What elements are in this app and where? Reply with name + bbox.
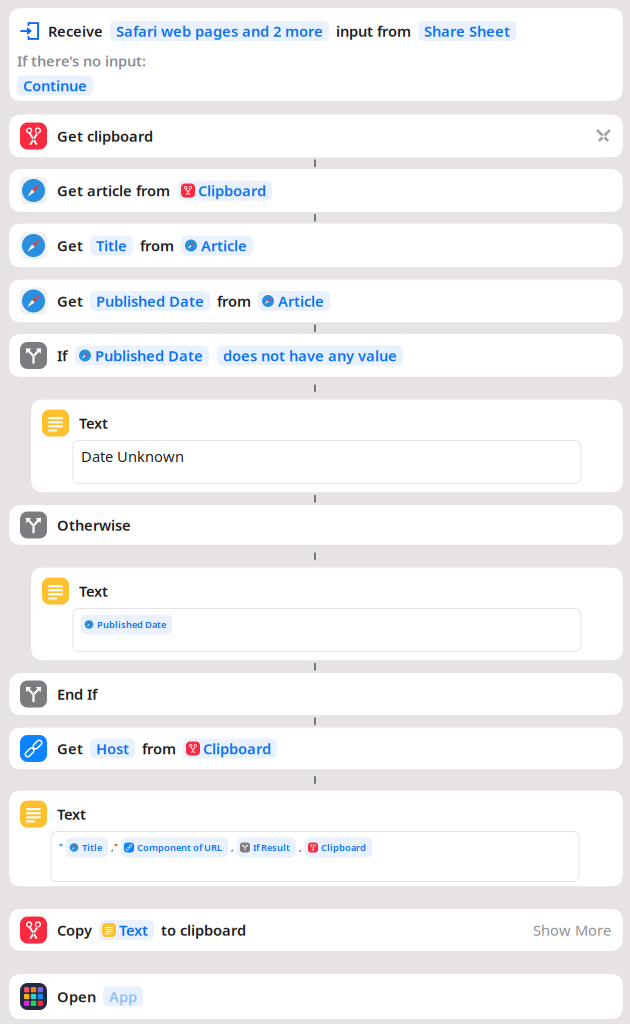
- staticText: Otherwise: [57, 515, 131, 535]
- staticText: Published Date: [97, 618, 166, 631]
- staticText: Receive: [48, 21, 103, 41]
- staticText: Safari web pages and 2 more: [116, 21, 323, 41]
- staticText: ,: [299, 841, 302, 854]
- staticText: Get: [57, 739, 83, 758]
- staticText: to clipboard: [161, 920, 246, 940]
- button[interactable]: Open: [9, 974, 623, 1019]
- staticText: If there's no input:: [17, 51, 146, 70]
- staticText: If Result: [253, 841, 290, 854]
- staticText: Text: [57, 804, 86, 824]
- button[interactable]: Otherwise: [9, 505, 623, 545]
- button[interactable]: Get article from: [9, 169, 623, 212]
- staticText: Share Sheet: [424, 21, 510, 41]
- button[interactable]: If: [9, 334, 623, 377]
- staticText: ,: [231, 841, 234, 854]
- staticText: App: [109, 987, 137, 1006]
- staticText: ": [59, 841, 63, 854]
- staticText: Published Date: [95, 346, 203, 365]
- staticText: Date Unknown: [81, 446, 184, 466]
- staticText: Show More: [533, 920, 611, 940]
- staticText: Text: [119, 920, 148, 940]
- button[interactable]: Text: [9, 790, 623, 886]
- button[interactable]: Receive: [9, 8, 623, 101]
- staticText: End If: [57, 684, 97, 704]
- staticText: Get clipboard: [57, 126, 153, 146]
- button[interactable]: Get: [9, 223, 623, 267]
- staticText: Text: [79, 581, 108, 601]
- staticText: Article: [201, 236, 247, 255]
- staticText: Clipboard: [203, 739, 271, 758]
- staticText: If: [57, 346, 67, 365]
- staticText: Clipboard: [321, 841, 366, 854]
- staticText: from: [217, 291, 251, 311]
- staticText: Article: [278, 291, 324, 311]
- staticText: Copy: [57, 920, 92, 940]
- button[interactable]: Copy: [9, 909, 623, 951]
- button[interactable]: Text: [31, 399, 623, 492]
- staticText: Title: [82, 841, 102, 854]
- staticText: from: [142, 739, 176, 758]
- staticText: Continue: [23, 76, 87, 95]
- staticText: Title: [96, 236, 127, 255]
- button[interactable]: Get: [9, 279, 623, 322]
- button[interactable]: End If: [9, 673, 623, 715]
- staticText: Clipboard: [198, 181, 266, 200]
- staticText: Get: [57, 291, 83, 311]
- staticText: ,": [111, 841, 118, 854]
- staticText: does not have any value: [223, 346, 397, 365]
- staticText: Host: [96, 739, 129, 758]
- staticText: Published Date: [96, 291, 204, 311]
- staticText: input from: [336, 21, 411, 41]
- staticText: from: [140, 236, 174, 255]
- staticText: Component of URL: [137, 841, 222, 854]
- staticText: Get: [57, 236, 83, 255]
- staticText: Open: [57, 987, 96, 1006]
- staticText: Text: [79, 413, 108, 433]
- staticText: Get article from: [57, 181, 170, 200]
- button[interactable]: Get clipboard: [9, 114, 623, 157]
- button[interactable]: Text: [31, 567, 623, 660]
- button[interactable]: Get: [9, 727, 623, 769]
